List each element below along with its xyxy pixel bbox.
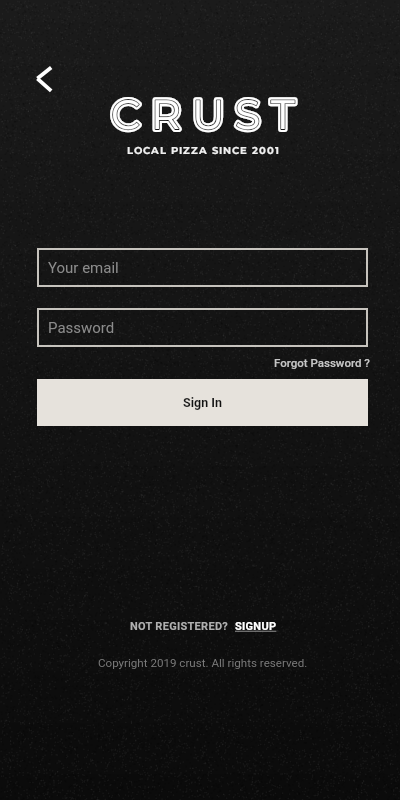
- staticText: NOT REGISTERED?: [130, 620, 229, 633]
- button[interactable]: Your email: [37, 248, 368, 287]
- staticText: Sign In: [183, 395, 222, 410]
- staticText: Password: [48, 319, 115, 337]
- button[interactable]: SIGNUP: [235, 620, 277, 633]
- staticText: SIGNUP: [235, 620, 277, 633]
- staticText: Your email: [48, 259, 119, 277]
- staticText: Forgot Password ?: [274, 356, 370, 369]
- button[interactable]: Back: [28, 58, 64, 94]
- button[interactable]: Password: [37, 308, 368, 347]
- button[interactable]: Forgot Password ?: [270, 352, 374, 373]
- staticText: Copyright 2019 crust. All rights reserve…: [98, 656, 308, 670]
- button[interactable]: Sign In: [37, 379, 368, 426]
